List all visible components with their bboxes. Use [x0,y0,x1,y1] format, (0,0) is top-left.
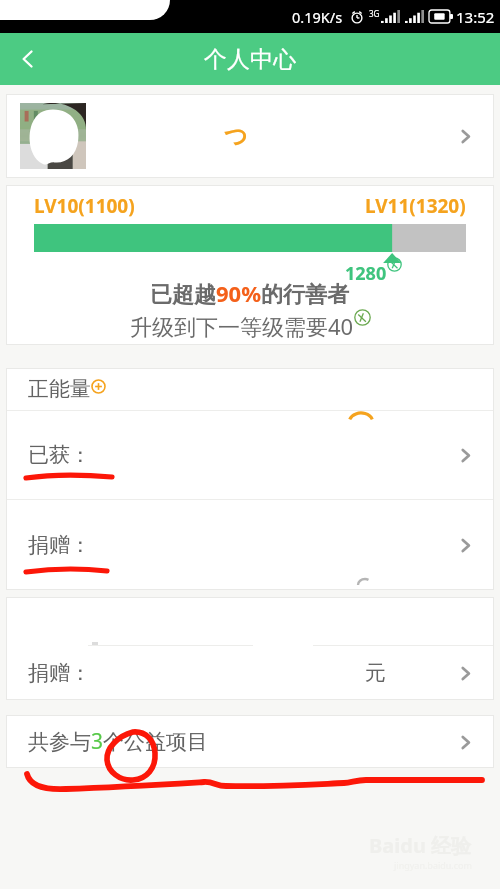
staticText: 13:52 [456,7,495,27]
staticText: 0.19K/s [292,7,343,27]
staticText: 已获： [28,442,91,468]
staticText: 个人中心 [204,45,296,74]
staticText: 3G [369,8,380,19]
staticText: Baidu 经验 [369,832,472,859]
staticText: 共参与3个公益项目 [28,727,209,756]
staticText: 已超越90%的行善者 [150,278,350,308]
staticText: LV10(1100) [34,193,135,219]
button[interactable]: 已获： [6,411,494,499]
staticText: LV11(1320) [365,193,466,219]
button[interactable]: 共参与3个公益项目 [6,715,494,768]
button[interactable]: 捐赠： [6,500,494,590]
staticText: つ [224,122,248,151]
button[interactable]: 捐赠： [6,646,494,700]
button[interactable]: つ [6,94,494,178]
staticText: 元 [365,660,386,686]
staticText: 1280 [345,261,387,286]
staticText: 捐赠： [28,660,91,686]
staticText: 正能量 [28,376,91,402]
staticText: 升级到下一等级需要40 [130,311,354,341]
staticText: 捐赠： [28,532,91,558]
button[interactable]: Back [0,33,56,85]
